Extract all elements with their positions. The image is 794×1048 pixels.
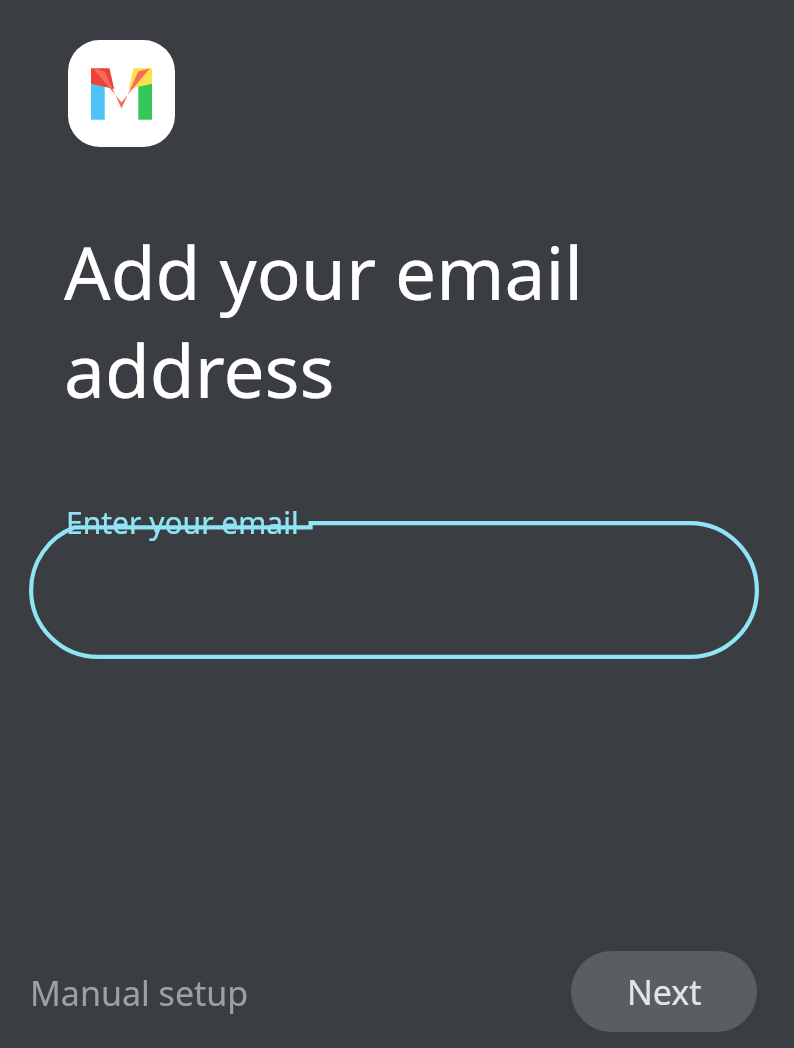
button[interactable]: Enter your email: [29, 521, 759, 659]
staticText: Add your email address: [64, 222, 664, 419]
staticText: Next: [627, 969, 702, 1015]
staticText: Enter your email: [66, 502, 299, 543]
staticText: Manual setup: [30, 970, 248, 1016]
button[interactable]: Next: [571, 951, 757, 1032]
button[interactable]: Manual setup: [8, 962, 248, 1024]
